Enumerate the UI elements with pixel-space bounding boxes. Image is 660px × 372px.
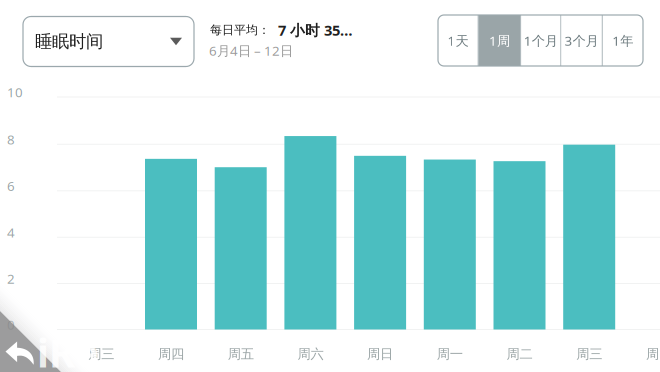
staticText: 周四: [646, 346, 660, 362]
staticText: 8: [7, 130, 15, 148]
staticText: 周四: [158, 346, 184, 362]
staticText: 1周: [489, 32, 510, 49]
staticText: 1个月: [524, 32, 558, 49]
button[interactable]: 1周: [479, 15, 520, 66]
button[interactable]: 1天: [438, 15, 478, 66]
staticText: 6月4日 – 12日: [209, 42, 293, 59]
staticText: 7 小时 35…: [270, 20, 353, 40]
button[interactable]: 3个月: [561, 15, 602, 66]
staticText: 1天: [447, 32, 468, 49]
staticText: 3个月: [565, 32, 599, 49]
staticText: 2: [7, 270, 15, 287]
staticText: 4: [7, 223, 15, 241]
staticText: 周五: [228, 346, 254, 362]
staticText: 周三: [576, 346, 602, 362]
staticText: 周六: [297, 346, 323, 362]
button[interactable]: 睡眠时间: [23, 16, 194, 66]
staticText: 周一: [437, 346, 463, 362]
button[interactable]: 1年: [603, 15, 643, 66]
staticText: 周三: [88, 346, 114, 362]
staticText: 睡眠时间: [35, 31, 103, 52]
staticText: 1年: [612, 32, 633, 49]
staticText: 10: [7, 83, 23, 101]
staticText: 6: [7, 177, 15, 195]
staticText: 周日: [367, 346, 393, 362]
staticText: 0: [7, 316, 15, 333]
button[interactable]: 1个月: [521, 15, 560, 66]
staticText: 周二: [506, 346, 532, 362]
staticText: 每日平均：: [210, 23, 270, 37]
staticText: iRe: [37, 325, 99, 372]
